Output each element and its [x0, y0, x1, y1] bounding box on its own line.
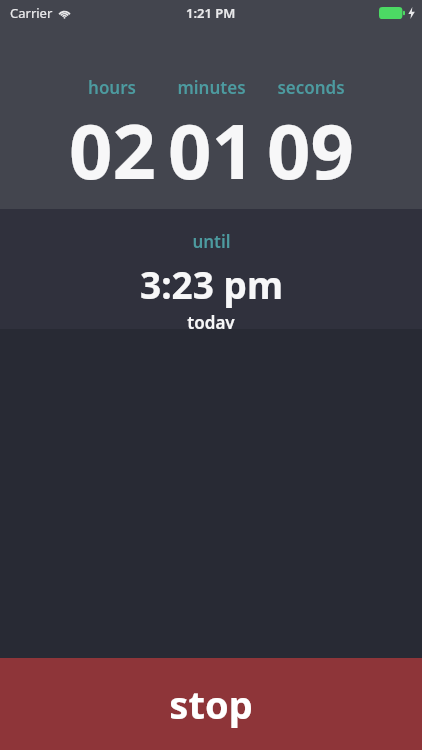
button[interactable]: until — [0, 209, 422, 329]
staticText: today — [187, 311, 235, 329]
staticText: 02 — [69, 98, 156, 202]
staticText: Carrier — [10, 4, 53, 22]
staticText: 1:21 PM — [186, 4, 236, 22]
button[interactable]: stop — [0, 658, 422, 750]
staticText: 09 — [267, 98, 354, 202]
staticText: until — [192, 230, 231, 253]
staticText: 3:23 pm — [140, 259, 283, 309]
staticText: minutes — [177, 76, 246, 99]
staticText: seconds — [277, 76, 345, 99]
staticText: stop — [169, 678, 253, 730]
staticText: hours — [88, 76, 136, 99]
staticText: 01 — [168, 98, 255, 202]
